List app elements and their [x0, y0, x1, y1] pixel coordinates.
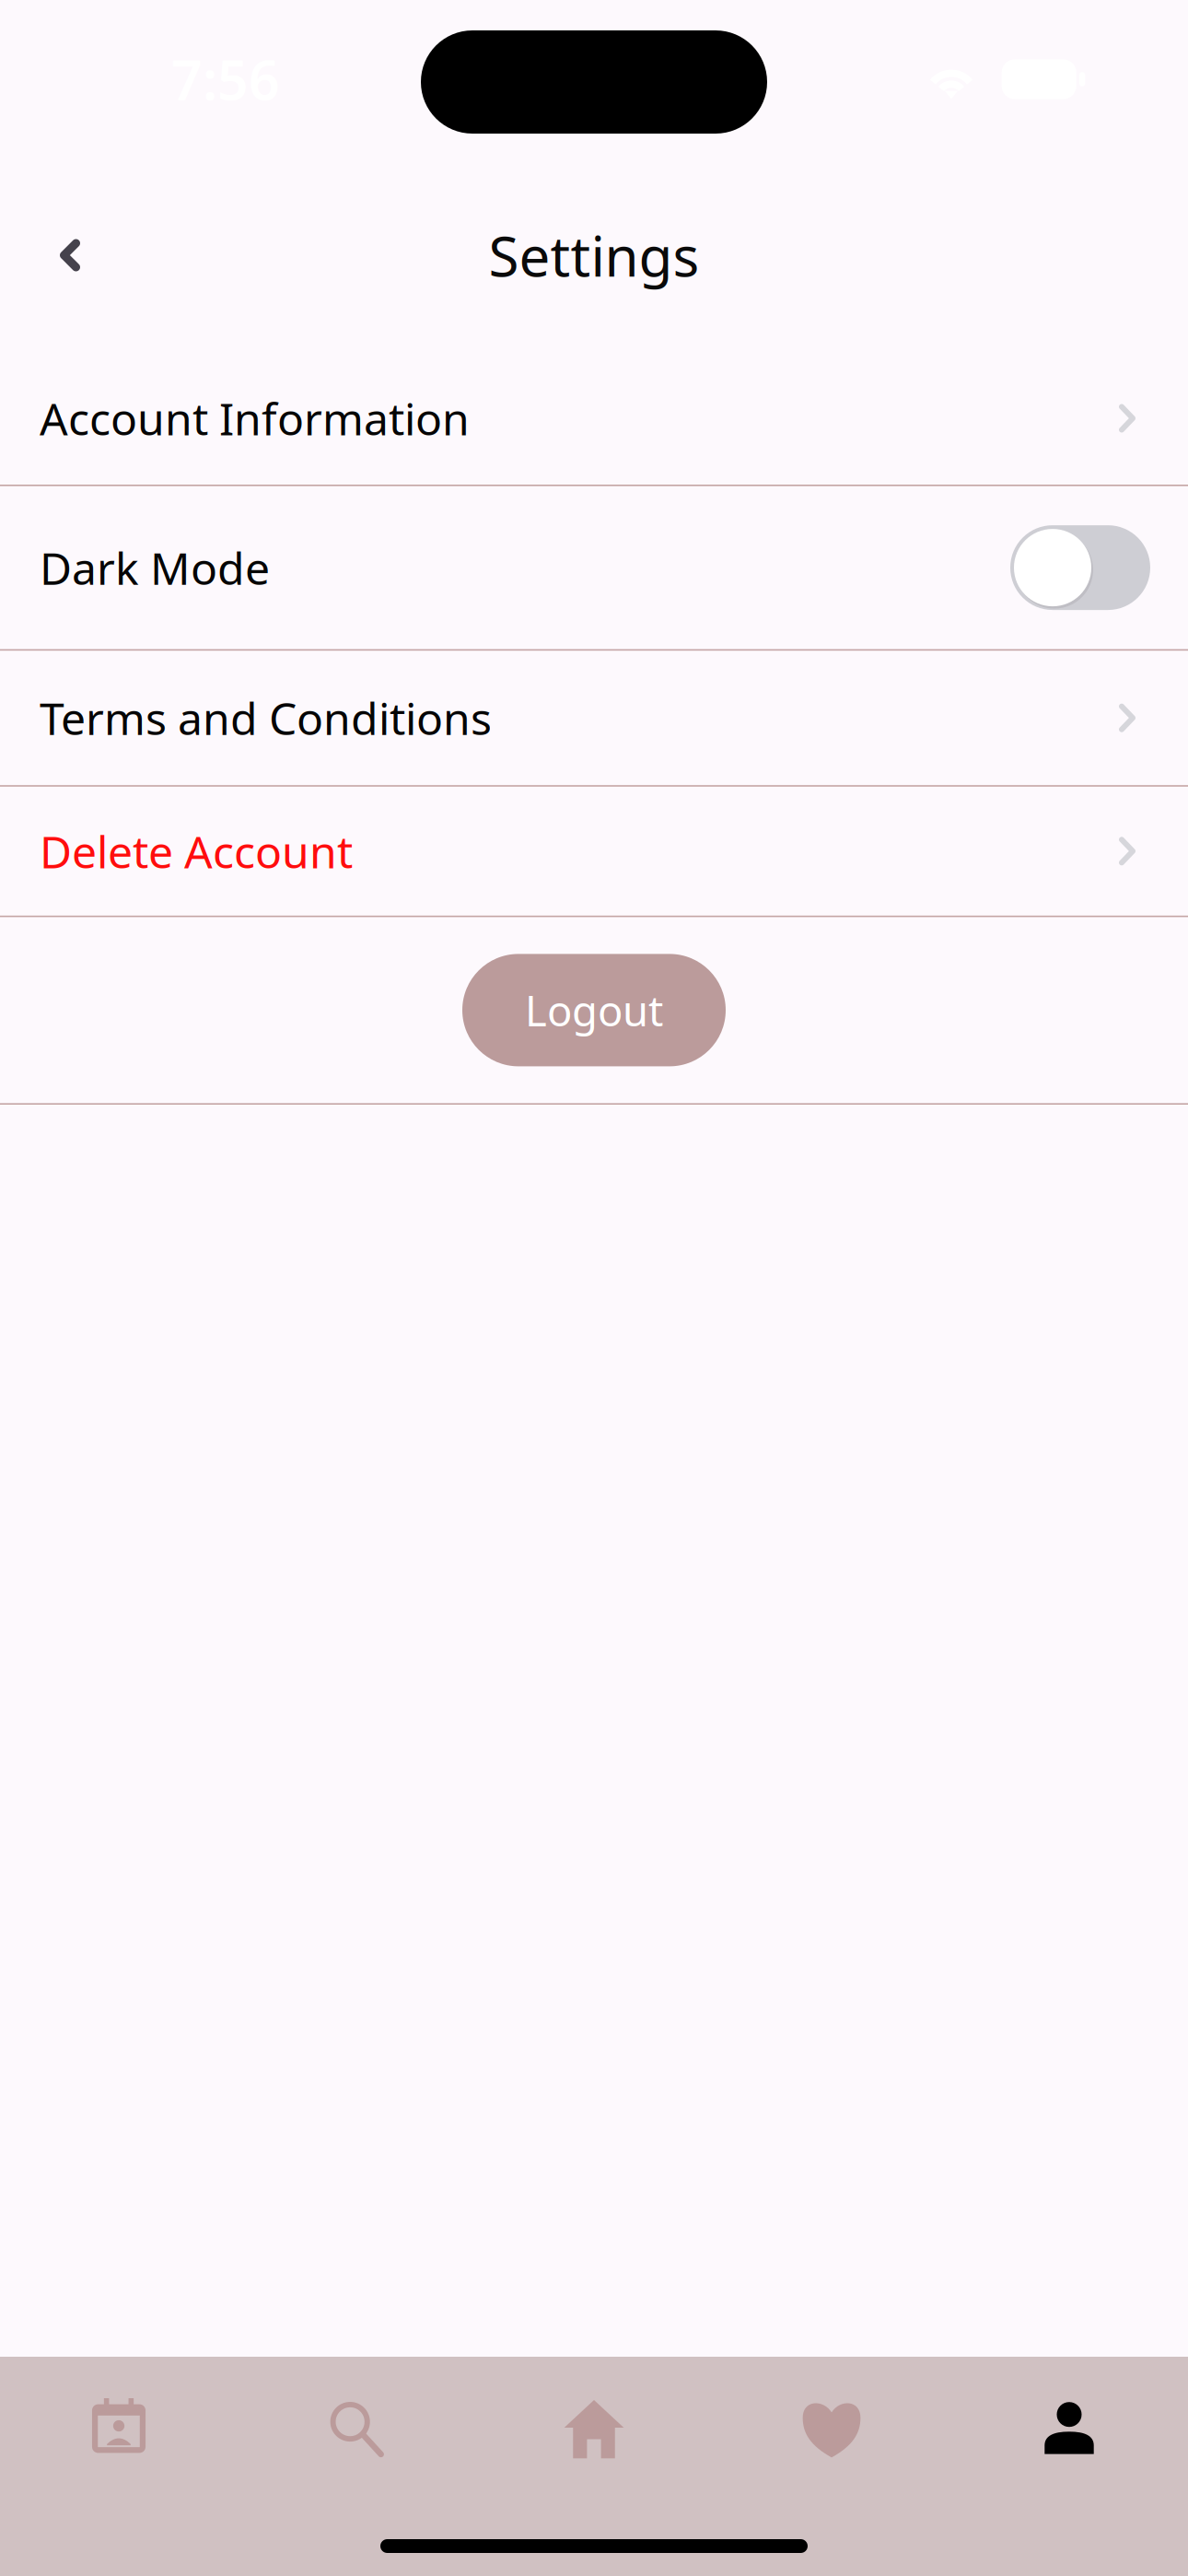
staticText: Terms and Conditions	[40, 688, 492, 747]
button[interactable]: Profile	[950, 2395, 1188, 2463]
button[interactable]: Home	[475, 2395, 713, 2463]
button[interactable]: Favorites	[713, 2395, 950, 2463]
staticText: Settings	[489, 219, 699, 292]
staticText: Logout	[525, 982, 663, 1038]
button[interactable]: Back	[0, 206, 124, 304]
staticText: Delete Account	[40, 822, 353, 880]
button[interactable]: Terms and Conditions	[0, 651, 1188, 785]
button[interactable]: Account Information	[0, 352, 1188, 485]
staticText: Dark Mode	[40, 538, 270, 597]
button[interactable]: Delete Account	[0, 787, 1188, 916]
button[interactable]: Search	[238, 2395, 475, 2463]
button[interactable]: Dark Mode	[0, 486, 1188, 649]
button[interactable]: Bookings	[0, 2395, 238, 2463]
button[interactable]: Logout	[462, 954, 726, 1066]
staticText: Account Information	[40, 389, 470, 448]
